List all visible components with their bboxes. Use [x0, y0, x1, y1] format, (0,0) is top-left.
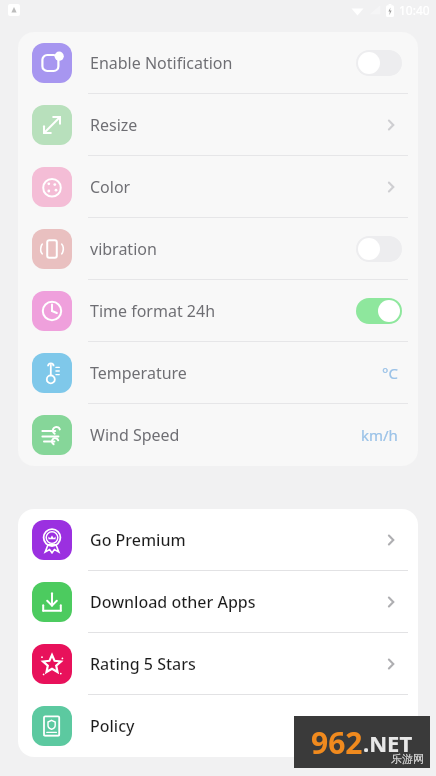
other: Open	[384, 115, 398, 135]
staticText: Enable Notification	[90, 52, 356, 74]
button[interactable]: Resize	[18, 94, 418, 156]
staticText: Time format 24h	[90, 300, 356, 322]
staticText: 962	[311, 722, 363, 763]
other: Open	[384, 530, 398, 550]
staticText: Policy	[90, 715, 384, 737]
button[interactable]: Enable Notification	[18, 32, 418, 94]
button[interactable]: Temperature	[18, 342, 418, 404]
staticText: Download other Apps	[90, 591, 384, 613]
staticText: Color	[90, 176, 384, 198]
button[interactable]: Toggle on	[356, 298, 402, 324]
button[interactable]: Go Premium	[18, 509, 418, 571]
button[interactable]: Download other Apps	[18, 571, 418, 633]
button[interactable]: Toggle off	[356, 236, 402, 262]
button[interactable]: vibration	[18, 218, 418, 280]
staticText: Go Premium	[90, 529, 384, 551]
staticText: 10:40	[399, 2, 430, 18]
staticText: Wind Speed	[90, 424, 361, 446]
button[interactable]: Rating 5 Stars	[18, 633, 418, 695]
button[interactable]: Color	[18, 156, 418, 218]
button[interactable]: Wind Speed	[18, 404, 418, 466]
staticText: Rating 5 Stars	[90, 653, 384, 675]
staticText: Resize	[90, 114, 384, 136]
staticText: Temperature	[90, 362, 382, 384]
other: Open	[384, 654, 398, 674]
staticText: km/h	[361, 425, 398, 445]
button[interactable]: Toggle off	[356, 50, 402, 76]
staticText: vibration	[90, 238, 356, 260]
button[interactable]: Policy	[18, 695, 418, 757]
other: Open	[384, 592, 398, 612]
staticText: °C	[382, 363, 398, 383]
staticText: .NET	[363, 728, 413, 758]
other: Open	[384, 177, 398, 197]
staticText: 乐游网	[391, 752, 424, 766]
button[interactable]: Time format 24h	[18, 280, 418, 342]
